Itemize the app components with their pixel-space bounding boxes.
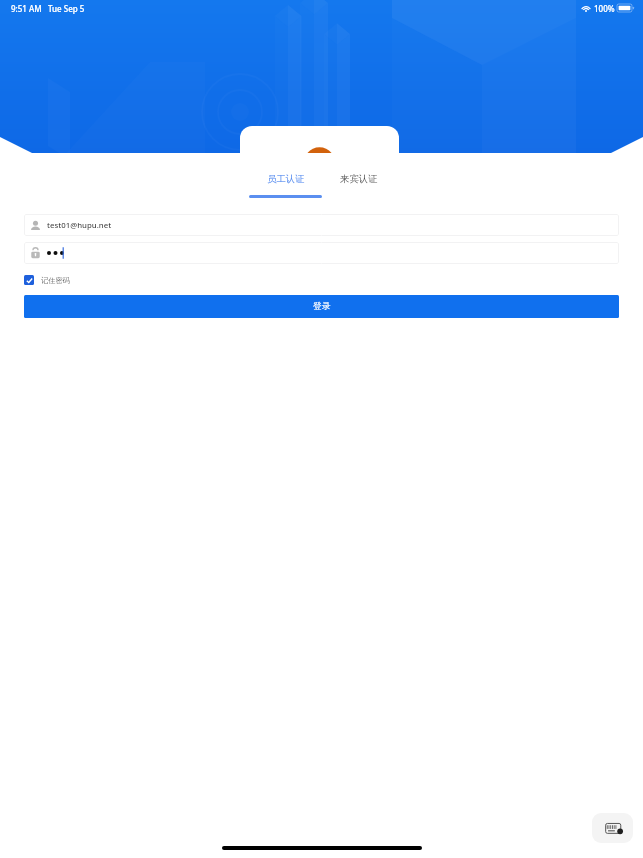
button[interactable]: 来宾认证 <box>322 173 395 199</box>
staticText: test01@hupu.net <box>47 220 112 231</box>
staticText: 登录 <box>313 301 331 312</box>
staticText: 来宾认证 <box>340 173 378 185</box>
button[interactable]: 记住密码 <box>24 275 70 285</box>
button[interactable] <box>24 242 619 264</box>
button[interactable]: test01@hupu.net <box>24 214 619 236</box>
staticText: 记住密码 <box>41 276 70 285</box>
staticText: 员工认证 <box>267 173 305 185</box>
button[interactable]: Hide keyboard <box>592 813 633 843</box>
button[interactable]: 员工认证 <box>249 173 322 199</box>
button[interactable]: 登录 <box>24 295 619 318</box>
staticText: 9:51 AM <box>11 3 42 14</box>
staticText: 100% <box>594 3 615 14</box>
staticText: Tue Sep 5 <box>48 3 85 14</box>
